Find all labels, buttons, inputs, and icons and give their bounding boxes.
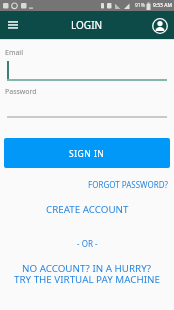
button[interactable]: NO ACCOUNT? IN A HURRY? (22, 262, 152, 275)
staticText: Email (5, 48, 23, 58)
button[interactable]: CREATE ACCOUNT (46, 203, 129, 216)
staticText: SIGN IN (69, 148, 105, 160)
button[interactable]: SIGN IN (4, 138, 170, 168)
staticText: 9:53 AM (153, 2, 172, 9)
staticText: Password (5, 87, 37, 97)
staticText: - OR - (77, 238, 98, 249)
button[interactable] (7, 95, 167, 118)
button[interactable] (151, 17, 168, 34)
button[interactable]: FORGOT PASSWORD? (88, 179, 168, 190)
button[interactable] (7, 56, 167, 81)
staticText: LOGIN (71, 18, 103, 32)
button[interactable] (4, 16, 22, 34)
button[interactable]: TRY THE VIRTUAL PAY MACHINE (14, 273, 160, 286)
staticText: 91% (135, 2, 145, 9)
